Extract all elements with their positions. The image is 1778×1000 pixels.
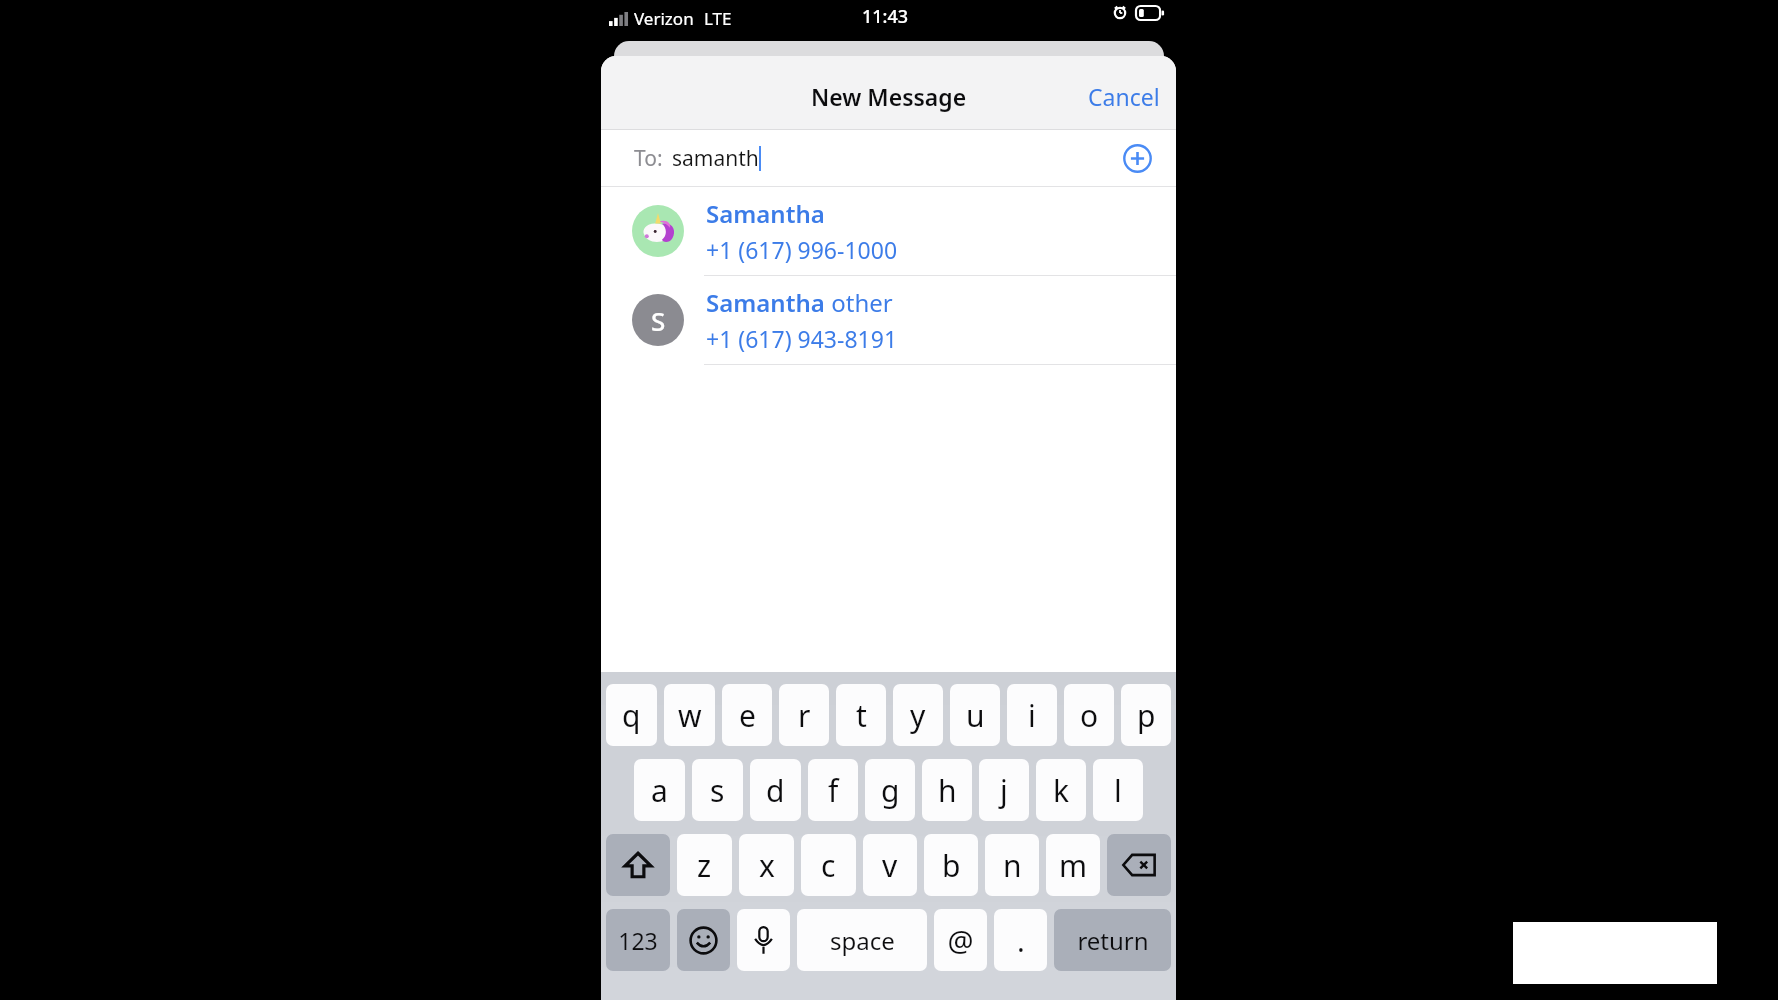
staticText: i	[1028, 695, 1036, 736]
button[interactable]: 123	[606, 909, 670, 971]
button[interactable]: l	[1093, 759, 1143, 821]
button[interactable]: v	[863, 834, 917, 896]
button[interactable]: f	[808, 759, 858, 821]
button[interactable]: S	[601, 276, 1176, 364]
button[interactable]: @	[934, 909, 987, 971]
staticText: d	[766, 770, 785, 811]
button[interactable]: q	[606, 684, 657, 746]
button[interactable]: Backspace	[1107, 834, 1171, 896]
button[interactable]: a	[634, 759, 685, 821]
button[interactable]: u	[950, 684, 1000, 746]
staticText: 123	[618, 925, 658, 956]
button[interactable]: t	[836, 684, 886, 746]
staticText: +1 (617) 943-8191	[706, 323, 898, 354]
staticText: space	[830, 924, 895, 957]
button[interactable]: .	[994, 909, 1047, 971]
button[interactable]: Add contact	[1114, 135, 1160, 181]
button[interactable]: y	[893, 684, 943, 746]
staticText: g	[881, 770, 900, 811]
button[interactable]: space	[797, 909, 927, 971]
staticText: e	[739, 695, 756, 736]
staticText: v	[882, 845, 898, 886]
staticText: u	[966, 695, 985, 736]
staticText: Verizon	[634, 7, 694, 30]
staticText: c	[821, 845, 836, 886]
staticText: j	[1000, 770, 1008, 811]
button[interactable]: m	[1046, 834, 1100, 896]
staticText: S	[651, 303, 666, 338]
staticText: return	[1077, 924, 1149, 957]
button[interactable]: n	[985, 834, 1039, 896]
staticText: New Message	[811, 81, 967, 112]
staticText: .	[1017, 921, 1025, 960]
staticText: other	[825, 286, 893, 319]
staticText: x	[759, 845, 775, 886]
button[interactable]: h	[922, 759, 972, 821]
staticText: z	[697, 845, 712, 886]
button[interactable]: g	[865, 759, 915, 821]
button[interactable]: Shift	[606, 834, 670, 896]
staticText: To:	[634, 144, 663, 173]
button[interactable]: Dictate	[737, 909, 790, 971]
button[interactable]: Emoji	[677, 909, 730, 971]
staticText: f	[828, 770, 839, 811]
button[interactable]: b	[924, 834, 978, 896]
button[interactable]: s	[692, 759, 743, 821]
staticText: l	[1114, 770, 1122, 811]
staticText: p	[1137, 695, 1156, 736]
staticText: @	[947, 921, 974, 960]
button[interactable]: e	[722, 684, 772, 746]
staticText: Samantha	[706, 286, 825, 319]
button[interactable]: p	[1121, 684, 1171, 746]
button[interactable]: w	[664, 684, 715, 746]
staticText: b	[942, 845, 961, 886]
staticText: a	[651, 770, 668, 811]
staticText: h	[938, 770, 957, 811]
staticText: m	[1059, 845, 1088, 886]
staticText: w	[678, 695, 702, 736]
staticText: 11:43	[862, 4, 909, 29]
button[interactable]: c	[801, 834, 856, 896]
staticText: Cancel	[1088, 81, 1160, 112]
button[interactable]: j	[979, 759, 1029, 821]
staticText: samanth	[672, 144, 759, 173]
staticText: y	[910, 695, 926, 736]
staticText: +1 (617) 996-1000	[706, 234, 898, 265]
staticText: k	[1053, 770, 1070, 811]
button[interactable]: i	[1007, 684, 1057, 746]
button[interactable]: Samantha	[601, 187, 1176, 275]
button[interactable]: return	[1054, 909, 1171, 971]
button[interactable]: d	[750, 759, 801, 821]
button[interactable]: k	[1036, 759, 1086, 821]
staticText: t	[856, 695, 867, 736]
button[interactable]: z	[677, 834, 732, 896]
staticText: Samantha	[706, 197, 825, 230]
staticText: s	[710, 770, 725, 811]
button[interactable]: Cancel	[1072, 71, 1176, 122]
button[interactable]: o	[1064, 684, 1114, 746]
button[interactable]: r	[779, 684, 829, 746]
staticText: r	[798, 695, 811, 736]
staticText: LTE	[704, 7, 732, 30]
staticText: o	[1080, 695, 1099, 736]
staticText: n	[1003, 845, 1022, 886]
staticText: q	[622, 695, 641, 736]
button[interactable]: x	[739, 834, 794, 896]
